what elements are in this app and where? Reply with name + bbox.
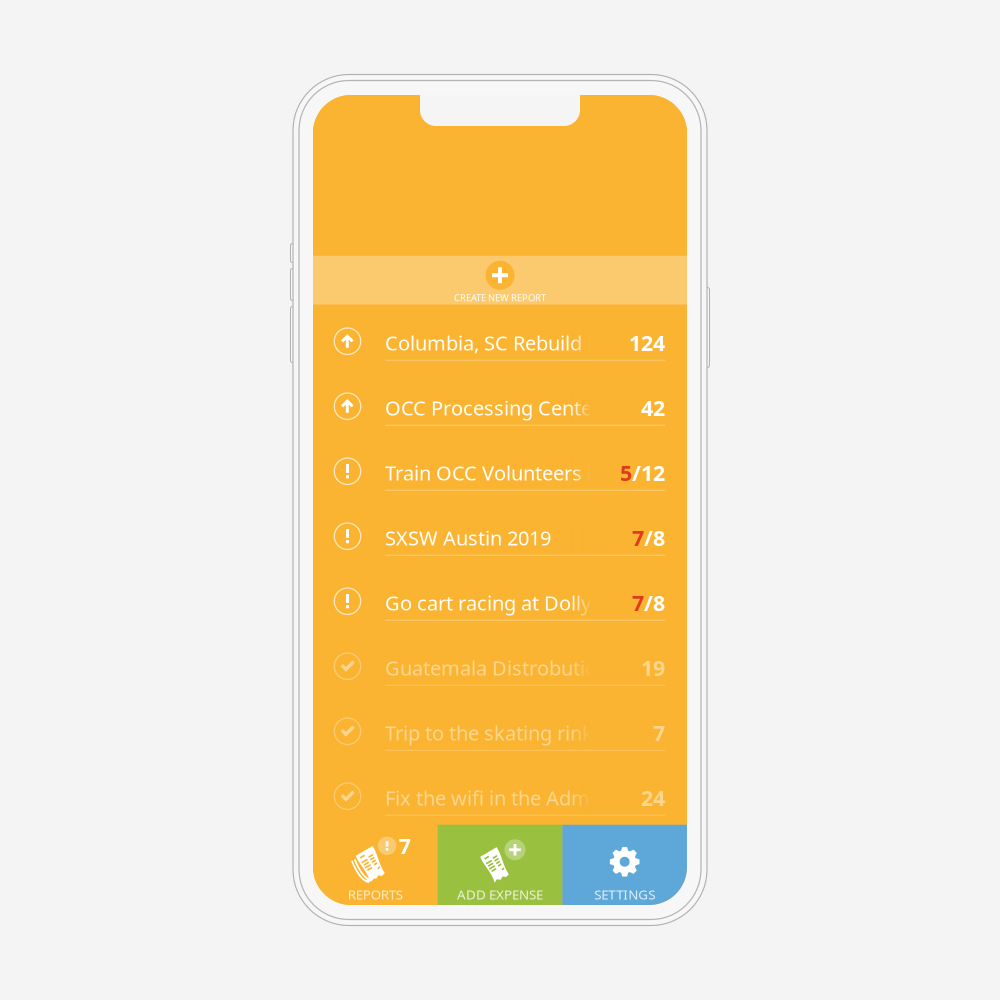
staticText: Train OCC Volunteers in NC <box>385 459 637 486</box>
staticText: OCC Processing Center Setup <box>385 394 658 421</box>
staticText: CREATE NEW REPORT <box>454 291 546 304</box>
staticText: 7 <box>653 719 665 747</box>
staticText: /8 <box>644 589 665 617</box>
button[interactable]: Columbia, SC Rebuild Project <box>313 305 687 370</box>
button[interactable]: CREATE NEW REPORT <box>313 256 687 305</box>
staticText: REPORTS <box>348 885 403 903</box>
staticText: 7 <box>399 832 411 860</box>
staticText: 19 <box>641 654 665 682</box>
button[interactable]: SETTINGS <box>562 825 687 905</box>
staticText: SETTINGS <box>594 885 655 903</box>
staticText: Trip to the skating rink in TN <box>385 719 646 746</box>
button[interactable]: SXSW Austin 2019 <box>313 500 687 565</box>
staticText: ADD EXPENSE <box>457 885 543 903</box>
staticText: 5 <box>620 459 632 487</box>
button[interactable]: Guatemala Distrobution Trip <box>313 630 687 695</box>
button[interactable]: OCC Processing Center Setup <box>313 370 687 435</box>
staticText: Fix the wifi in the Admin bldg <box>385 784 653 811</box>
staticText: Guatemala Distrobution Trip <box>385 654 649 681</box>
staticText: /12 <box>632 459 665 487</box>
button[interactable]: Go cart racing at Dollywood <box>313 565 687 630</box>
staticText: 124 <box>629 329 665 357</box>
staticText: Go cart racing at Dollywood <box>385 589 643 616</box>
staticText: 7 <box>632 524 644 552</box>
button[interactable]: 7 <box>313 825 438 905</box>
staticText: Columbia, SC Rebuild Project <box>385 329 652 356</box>
button[interactable]: Train OCC Volunteers in NC <box>313 435 687 500</box>
staticText: SXSW Austin 2019 <box>385 524 551 551</box>
staticText: 42 <box>641 394 665 422</box>
button[interactable]: ADD EXPENSE <box>438 825 562 905</box>
button[interactable]: Fix the wifi in the Admin bldg <box>313 760 687 825</box>
staticText: 24 <box>641 784 665 812</box>
staticText: /8 <box>644 524 665 552</box>
staticText: 7 <box>632 589 644 617</box>
button[interactable]: Trip to the skating rink in TN <box>313 695 687 760</box>
